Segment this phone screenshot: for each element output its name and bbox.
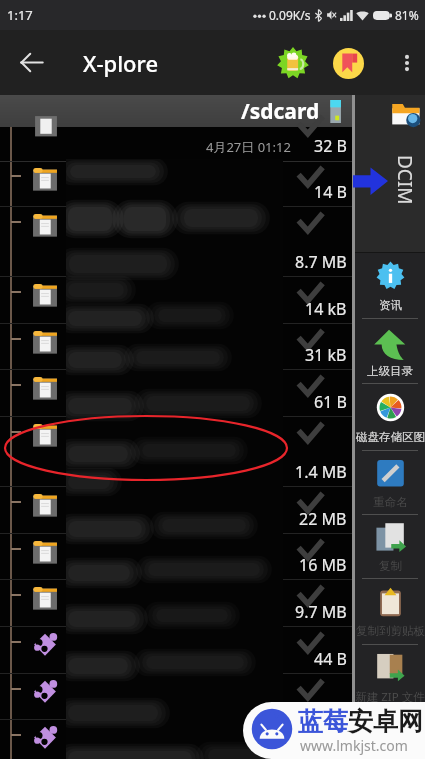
button[interactable]	[0, 720, 352, 759]
staticText: 4月27日 01:12	[206, 138, 291, 156]
button[interactable]: 61 B	[0, 370, 352, 417]
staticText: 81%	[395, 7, 419, 23]
staticText: 蓝莓	[298, 706, 348, 737]
button[interactable]: Bookmarks	[325, 40, 371, 86]
button[interactable]: 4月27日 01:12	[0, 127, 352, 161]
staticText: 0.09K/s	[269, 7, 311, 23]
staticText: 1:17	[7, 6, 33, 24]
button[interactable]: 8.7 MB	[0, 207, 352, 277]
button[interactable]: Donate	[270, 40, 316, 86]
button[interactable]: 上级目录	[355, 319, 425, 384]
button[interactable]: 31 kB	[0, 324, 352, 370]
staticText: 复制到剪贴板	[356, 624, 425, 638]
staticText: 安卓网	[348, 706, 423, 737]
staticText: /sdcard	[241, 97, 320, 126]
staticText: 重命名	[373, 495, 408, 509]
staticText: 新建 ZIP 文件	[355, 689, 425, 705]
staticText: 32 B	[314, 135, 347, 157]
staticText: www.lmkjst.com	[300, 736, 408, 755]
staticText: 14 kB	[305, 298, 347, 320]
staticText: 复制	[379, 559, 402, 573]
staticText: 16 MB	[299, 554, 347, 576]
button[interactable]: 新建 ZIP 文件	[355, 645, 425, 711]
button[interactable]: More options	[389, 30, 425, 95]
button[interactable]: Back	[0, 30, 62, 95]
button[interactable]: 44 B	[0, 627, 352, 674]
button[interactable]: 14 kB	[0, 277, 352, 324]
button[interactable]: 14 B	[0, 161, 352, 207]
button[interactable]: 9.7 MB	[0, 580, 352, 627]
staticText: X-plore	[83, 48, 159, 78]
staticText: 44 B	[314, 648, 347, 670]
button[interactable]: 磁盘存储区图	[355, 384, 425, 451]
button[interactable]: 22 MB	[0, 487, 352, 534]
button[interactable]: 重命名	[355, 451, 425, 515]
staticText: 8.7 MB	[295, 251, 347, 273]
other: Move here	[353, 165, 388, 197]
staticText: 61 B	[314, 391, 347, 413]
button[interactable]: 1.4 MB	[0, 417, 352, 487]
button[interactable]: 复制到剪贴板	[355, 579, 425, 645]
staticText: 1.4 MB	[295, 461, 347, 483]
staticText: 上级目录	[367, 364, 413, 378]
staticText: 22 MB	[299, 508, 347, 530]
staticText: 资讯	[379, 298, 402, 312]
other: DCIM folder	[391, 99, 422, 130]
button[interactable]	[0, 674, 352, 720]
button[interactable]: 16 MB	[0, 534, 352, 580]
staticText: 磁盘存储区图	[356, 430, 425, 444]
staticText: 9.7 MB	[295, 601, 347, 623]
button[interactable]: 资讯	[355, 253, 425, 319]
staticText: DCIM	[392, 155, 418, 205]
staticText: 31 kB	[305, 344, 347, 366]
button[interactable]: /sdcard	[0, 95, 352, 127]
staticText: 14 B	[314, 181, 347, 203]
button[interactable]: 复制	[355, 515, 425, 579]
